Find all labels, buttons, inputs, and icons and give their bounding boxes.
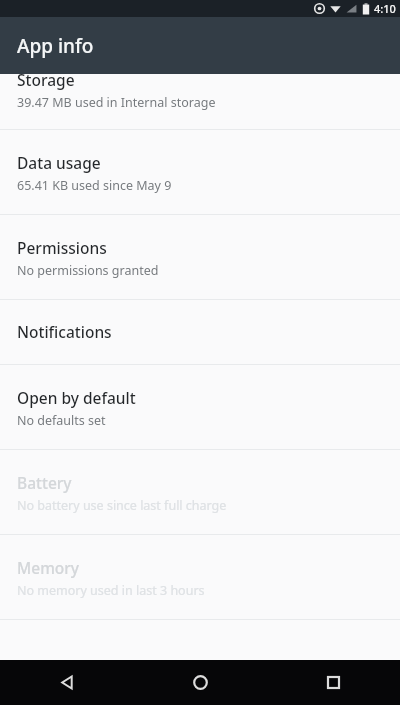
staticText: No permissions granted	[17, 262, 159, 279]
staticText: No defaults set	[17, 412, 106, 429]
staticText: 65.41 KB used since May 9	[17, 177, 172, 194]
button[interactable]: Battery	[0, 450, 400, 534]
staticText: No memory used in last 3 hours	[17, 582, 205, 599]
button[interactable]: Permissions	[0, 215, 400, 299]
staticText: Storage	[17, 74, 75, 90]
button[interactable]: Recent apps	[267, 660, 400, 705]
button[interactable]: Home	[134, 660, 267, 705]
staticText: Notifications	[17, 321, 112, 342]
staticText: Battery	[17, 472, 72, 493]
staticText: No battery use since last full charge	[17, 497, 227, 514]
button[interactable]: Open by default	[0, 365, 400, 449]
staticText: 4:10	[374, 1, 396, 16]
button[interactable]: Memory	[0, 535, 400, 619]
button[interactable]: Data usage	[0, 130, 400, 214]
staticText: 39.47 MB used in Internal storage	[17, 94, 216, 111]
staticText: Data usage	[17, 152, 101, 173]
button[interactable]: Notifications	[0, 300, 400, 364]
button[interactable]: Back	[0, 660, 134, 705]
staticText: App info	[17, 33, 94, 59]
staticText: Memory	[17, 557, 80, 578]
staticText: Open by default	[17, 387, 136, 408]
staticText: Permissions	[17, 237, 107, 258]
button[interactable]: Storage	[0, 74, 400, 129]
